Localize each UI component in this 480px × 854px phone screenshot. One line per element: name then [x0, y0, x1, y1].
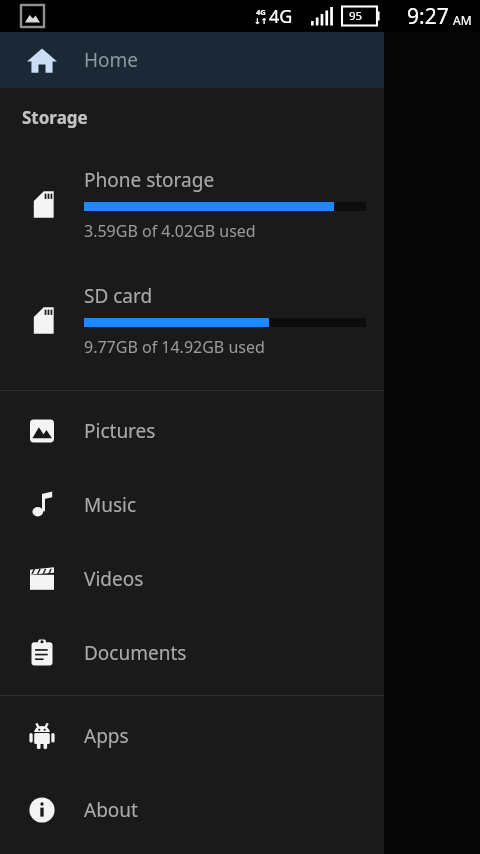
other: Music: [0, 490, 84, 520]
button[interactable]: Pictures: [0, 394, 384, 468]
staticText: ↓↑: [254, 17, 268, 26]
other: Pictures: [0, 416, 84, 446]
staticText: 4G: [256, 7, 266, 17]
other: Documents: [0, 638, 84, 668]
staticText: Documents: [84, 640, 187, 666]
staticText: SD card: [84, 283, 153, 309]
staticText: AM: [453, 12, 472, 28]
staticText: Phone storage: [84, 167, 215, 193]
staticText: 4G: [269, 4, 293, 29]
staticText: Videos: [84, 566, 144, 592]
staticText: 95: [349, 8, 363, 24]
staticText: Storage: [22, 106, 88, 129]
button[interactable]: Documents: [0, 616, 384, 690]
button[interactable]: About: [0, 773, 384, 847]
button[interactable]: Music: [0, 468, 384, 542]
staticText: 3.59GB of 4.02GB used: [84, 220, 256, 242]
other: About: [0, 795, 84, 825]
staticText: About: [84, 797, 138, 823]
staticText: Music: [84, 492, 137, 518]
button[interactable]: Phone storage: [0, 146, 384, 262]
button[interactable]: SD card: [0, 262, 384, 378]
other: Apps: [0, 721, 84, 751]
staticText: Home: [84, 47, 139, 73]
staticText: Pictures: [84, 418, 156, 444]
staticText: 9:27: [407, 2, 449, 31]
staticText: 9.77GB of 14.92GB used: [84, 336, 265, 358]
button[interactable]: Apps: [0, 699, 384, 773]
button[interactable]: Home: [0, 32, 384, 88]
staticText: Apps: [84, 723, 129, 749]
other: Videos: [0, 564, 84, 594]
button[interactable]: Videos: [0, 542, 384, 616]
